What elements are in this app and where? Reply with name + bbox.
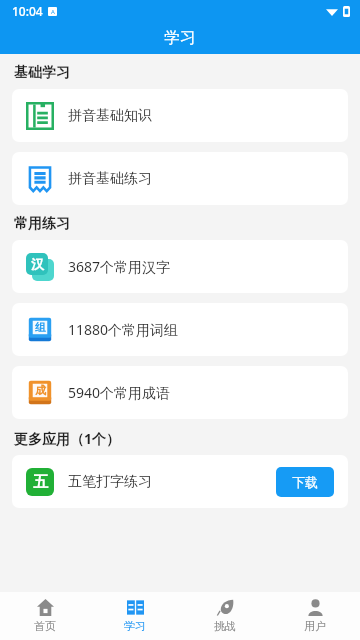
button[interactable]: 五 xyxy=(12,455,348,508)
button[interactable]: 组 xyxy=(12,303,348,356)
staticText: 11880个常用词组 xyxy=(68,320,179,339)
staticText: 成 xyxy=(35,383,46,397)
staticText: 用户 xyxy=(304,619,326,633)
button[interactable]: 成 xyxy=(12,366,348,419)
staticText: 10:04 xyxy=(12,3,43,19)
other: 挑战 xyxy=(217,599,234,616)
button[interactable]: 拼音基础练习 xyxy=(12,152,348,205)
staticText: 汉 xyxy=(31,256,44,272)
button[interactable]: 挑战 xyxy=(180,592,270,640)
staticText: 拼音基础练习 xyxy=(68,170,152,188)
staticText: 5940个常用成语 xyxy=(68,383,171,402)
staticText: 五笔打字练习 xyxy=(68,473,152,491)
staticText: 下载 xyxy=(292,474,318,490)
other: 学习 xyxy=(127,599,144,616)
other: 用户 xyxy=(307,599,324,616)
button[interactable]: 下载 xyxy=(276,467,334,497)
button[interactable]: 首页 xyxy=(0,592,90,640)
staticText: 学习 xyxy=(164,28,196,48)
other: 首页 xyxy=(37,599,54,616)
staticText: 3687个常用汉字 xyxy=(68,257,171,276)
staticText: 学习 xyxy=(124,619,146,633)
staticText: 更多应用（1个） xyxy=(14,429,121,448)
staticText: 常用练习 xyxy=(14,215,70,233)
staticText: 挑战 xyxy=(214,619,236,633)
staticText: 拼音基础知识 xyxy=(68,107,152,125)
staticText: 首页 xyxy=(34,619,56,633)
staticText: 组 xyxy=(35,320,46,334)
button[interactable]: 汉 xyxy=(12,240,348,293)
staticText: A xyxy=(51,8,55,16)
staticText: 五 xyxy=(33,473,48,492)
button[interactable]: 用户 xyxy=(270,592,360,640)
button[interactable]: 学习 xyxy=(90,592,180,640)
button[interactable]: 拼音基础知识 xyxy=(12,89,348,142)
staticText: 基础学习 xyxy=(14,64,70,82)
